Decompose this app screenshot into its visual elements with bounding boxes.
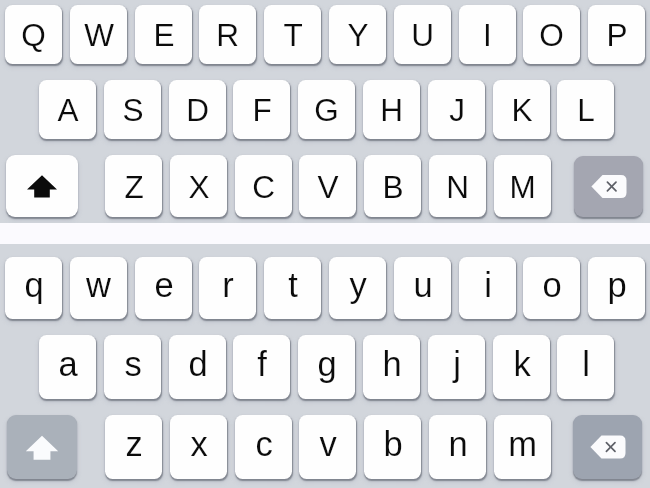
staticText: K [511, 92, 533, 127]
button[interactable]: o [523, 257, 580, 319]
button[interactable]: K [493, 80, 550, 139]
staticText: u [413, 266, 433, 305]
button[interactable]: c [235, 415, 292, 479]
staticText: B [382, 169, 404, 204]
staticText: i [484, 266, 492, 305]
staticText: w [86, 266, 111, 305]
staticText: S [122, 92, 144, 127]
button[interactable]: h [363, 335, 420, 399]
button[interactable]: L [557, 80, 614, 139]
staticText: b [383, 425, 403, 464]
button[interactable]: q [5, 257, 62, 319]
staticText: j [453, 345, 461, 384]
button[interactable]: Backspace [573, 415, 642, 479]
staticText: c [255, 425, 273, 464]
staticText: Z [124, 169, 144, 204]
button[interactable]: J [428, 80, 485, 139]
staticText: P [606, 17, 628, 52]
button[interactable]: Shift [7, 415, 77, 479]
staticText: x [190, 425, 208, 464]
button[interactable]: a [39, 335, 96, 399]
staticText: l [582, 345, 590, 384]
button[interactable]: l [557, 335, 614, 399]
button[interactable]: A [39, 80, 96, 139]
button[interactable]: S [104, 80, 161, 139]
staticText: N [446, 169, 469, 204]
staticText: V [317, 169, 339, 204]
button[interactable]: s [104, 335, 161, 399]
button[interactable]: Q [5, 5, 62, 64]
button[interactable]: E [135, 5, 192, 64]
button[interactable]: I [459, 5, 516, 64]
staticText: A [57, 92, 79, 127]
button[interactable]: X [170, 155, 227, 217]
staticText: m [508, 425, 537, 464]
staticText: p [607, 266, 627, 305]
staticText: t [288, 266, 298, 305]
staticText: o [542, 266, 562, 305]
button[interactable]: j [428, 335, 485, 399]
staticText: d [188, 345, 208, 384]
button[interactable]: t [264, 257, 321, 319]
button[interactable]: B [364, 155, 421, 217]
staticText: a [58, 345, 78, 384]
staticText: H [380, 92, 403, 127]
button[interactable]: U [394, 5, 451, 64]
button[interactable]: p [588, 257, 645, 319]
staticText: n [448, 425, 468, 464]
staticText: F [252, 92, 272, 127]
button[interactable]: F [233, 80, 290, 139]
button[interactable]: f [233, 335, 290, 399]
button[interactable]: b [364, 415, 421, 479]
button[interactable]: k [493, 335, 550, 399]
staticText: z [125, 425, 143, 464]
button[interactable]: Backspace [574, 156, 643, 217]
staticText: E [153, 17, 175, 52]
button[interactable]: P [588, 5, 645, 64]
button[interactable]: y [329, 257, 386, 319]
button[interactable]: T [264, 5, 321, 64]
staticText: Y [347, 17, 369, 52]
staticText: Q [21, 17, 46, 52]
button[interactable]: x [170, 415, 227, 479]
button[interactable]: N [429, 155, 486, 217]
button[interactable]: W [70, 5, 127, 64]
staticText: G [314, 92, 339, 127]
staticText: J [449, 92, 465, 127]
button[interactable]: C [235, 155, 292, 217]
staticText: r [222, 266, 234, 305]
button[interactable]: Z [105, 155, 162, 217]
button[interactable]: Y [329, 5, 386, 64]
button[interactable]: O [523, 5, 580, 64]
staticText: X [188, 169, 210, 204]
button[interactable]: r [199, 257, 256, 319]
staticText: q [24, 266, 44, 305]
button[interactable]: R [199, 5, 256, 64]
button[interactable]: M [494, 155, 551, 217]
staticText: e [154, 266, 174, 305]
button[interactable]: v [299, 415, 356, 479]
button[interactable]: n [429, 415, 486, 479]
button[interactable]: g [298, 335, 355, 399]
button[interactable]: i [459, 257, 516, 319]
button[interactable]: m [494, 415, 551, 479]
button[interactable]: V [299, 155, 356, 217]
staticText: f [257, 345, 267, 384]
staticText: g [317, 345, 337, 384]
staticText: I [483, 17, 492, 52]
staticText: y [349, 266, 367, 305]
button[interactable]: Shift [6, 155, 78, 217]
staticText: L [577, 92, 595, 127]
button[interactable]: H [363, 80, 420, 139]
button[interactable]: G [298, 80, 355, 139]
button[interactable]: e [135, 257, 192, 319]
staticText: h [382, 345, 402, 384]
button[interactable]: u [394, 257, 451, 319]
button[interactable]: d [169, 335, 226, 399]
button[interactable]: z [105, 415, 162, 479]
button[interactable]: D [169, 80, 226, 139]
staticText: D [186, 92, 209, 127]
staticText: O [539, 17, 564, 52]
button[interactable]: w [70, 257, 127, 319]
staticText: M [509, 169, 536, 204]
